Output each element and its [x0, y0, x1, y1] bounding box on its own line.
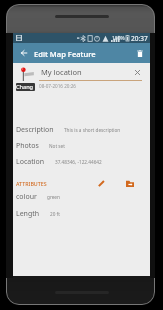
- staticText: 20 ft: [50, 211, 60, 217]
- button[interactable]: Back: [17, 43, 30, 63]
- button[interactable]: Edit attributes: [94, 176, 108, 190]
- staticText: Not set: [49, 143, 65, 149]
- staticText: This is a short description: [64, 127, 121, 133]
- staticText: 37.48346, -122.44642: [55, 159, 102, 165]
- button[interactable]: Photos: [13, 140, 150, 151]
- button[interactable]: Length: [13, 208, 150, 219]
- button[interactable]: Description: [13, 124, 150, 135]
- staticText: Photos: [16, 141, 39, 151]
- staticText: Description: [16, 125, 54, 135]
- staticText: 08-07-2016 20:26: [39, 83, 76, 89]
- staticText: Length: [16, 209, 40, 219]
- staticText: Edit Map Feature: [34, 49, 96, 59]
- button[interactable]: Delete: [132, 43, 147, 63]
- staticText: Location: [16, 157, 45, 167]
- button[interactable]: Manage attributes: [123, 176, 137, 190]
- staticText: colour: [16, 192, 37, 202]
- staticText: 20:37: [131, 34, 148, 43]
- button[interactable]: Location: [13, 156, 150, 167]
- button[interactable]: colour: [13, 191, 150, 202]
- button[interactable]: Clear name: [132, 67, 143, 78]
- button[interactable]: Change: [16, 83, 35, 91]
- staticText: green: [47, 194, 60, 200]
- staticText: Change: [16, 83, 35, 91]
- staticText: ATTRIBUTES: [16, 180, 47, 187]
- staticText: 100%: [112, 35, 125, 42]
- staticText: My location: [41, 67, 82, 77]
